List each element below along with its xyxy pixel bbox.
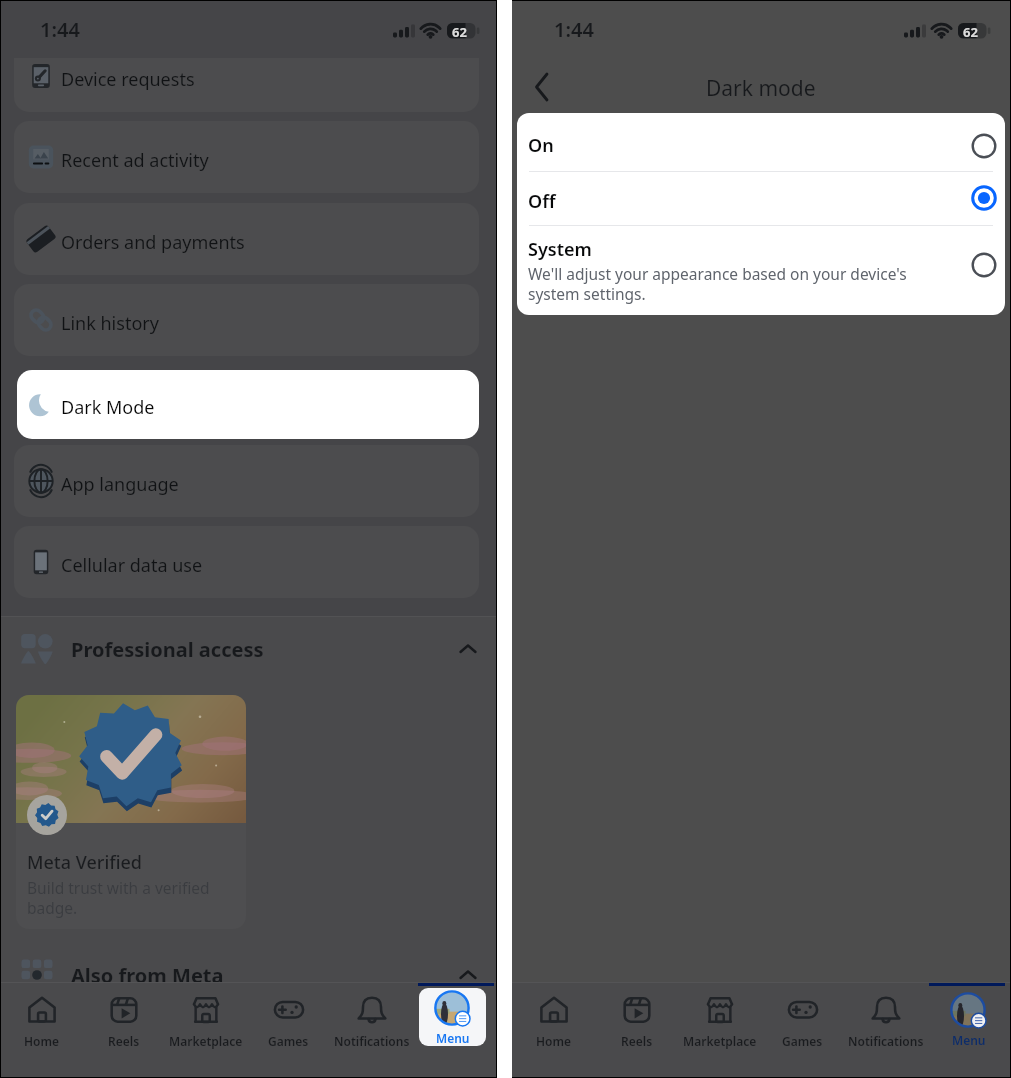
button[interactable]: Home	[1, 982, 83, 1077]
staticText: Reels	[108, 1033, 140, 1049]
staticText: 1:44	[554, 16, 594, 43]
staticText: Home	[536, 1033, 572, 1049]
button[interactable]: Home	[512, 982, 595, 1077]
button[interactable]: Marketplace	[165, 982, 247, 1077]
staticText: Build trust with a verified badge.	[27, 877, 215, 918]
staticText: Off	[528, 189, 556, 214]
staticText: Marketplace	[169, 1033, 243, 1049]
staticText: 62	[452, 23, 467, 41]
staticText: Dark Mode	[61, 395, 155, 420]
button[interactable]: Also from Meta	[1, 952, 496, 984]
staticText: Also from Meta	[71, 962, 224, 984]
button[interactable]: Cellular data use	[14, 526, 479, 598]
staticText: Dark mode	[706, 74, 816, 103]
button[interactable]: Orders and payments	[14, 203, 479, 275]
button[interactable]: Menu	[419, 988, 486, 1046]
staticText: Device requests	[61, 67, 195, 92]
staticText: 62	[963, 23, 978, 41]
staticText: Notifications	[848, 1033, 924, 1049]
button[interactable]: Back	[520, 64, 566, 110]
button[interactable]: Professional access	[1, 626, 496, 672]
staticText: Cellular data use	[61, 553, 203, 578]
staticText: Games	[268, 1033, 309, 1049]
staticText: System	[528, 237, 592, 262]
staticText: Marketplace	[683, 1033, 757, 1049]
staticText: Home	[24, 1033, 60, 1049]
staticText: App language	[61, 472, 179, 497]
staticText: On	[528, 133, 554, 158]
button[interactable]: Meta Verified	[16, 695, 246, 929]
staticText: 1:44	[40, 16, 80, 43]
button[interactable]: Marketplace	[678, 982, 761, 1077]
button[interactable]: Recent ad activity	[14, 121, 479, 193]
button[interactable]: Reels	[595, 982, 678, 1077]
button[interactable]: Games	[761, 982, 844, 1077]
button[interactable]: Off	[517, 171, 1005, 225]
staticText: Games	[782, 1033, 823, 1049]
staticText: We'll adjust your appearance based on yo…	[528, 263, 932, 304]
button[interactable]: Device requests	[14, 58, 479, 112]
button[interactable]: System	[517, 225, 1005, 315]
staticText: Recent ad activity	[61, 148, 209, 173]
button[interactable]: Menu	[927, 982, 1010, 1077]
button[interactable]: App language	[14, 445, 479, 517]
button[interactable]: On	[517, 113, 1005, 171]
staticText: Meta Verified	[27, 850, 143, 875]
staticText: Notifications	[334, 1033, 410, 1049]
button[interactable]: Games	[247, 982, 330, 1077]
staticText: Menu	[952, 1032, 986, 1048]
staticText: Reels	[621, 1033, 653, 1049]
staticText: Link history	[61, 311, 159, 336]
staticText: Orders and payments	[61, 230, 245, 255]
button[interactable]: Link history	[14, 284, 479, 356]
button[interactable]: Notifications	[330, 982, 413, 1077]
button[interactable]: Dark Mode	[17, 370, 479, 439]
staticText: Menu	[436, 1030, 470, 1046]
button[interactable]: Reels	[83, 982, 165, 1077]
staticText: Professional access	[71, 636, 264, 663]
button[interactable]: Notifications	[844, 982, 927, 1077]
